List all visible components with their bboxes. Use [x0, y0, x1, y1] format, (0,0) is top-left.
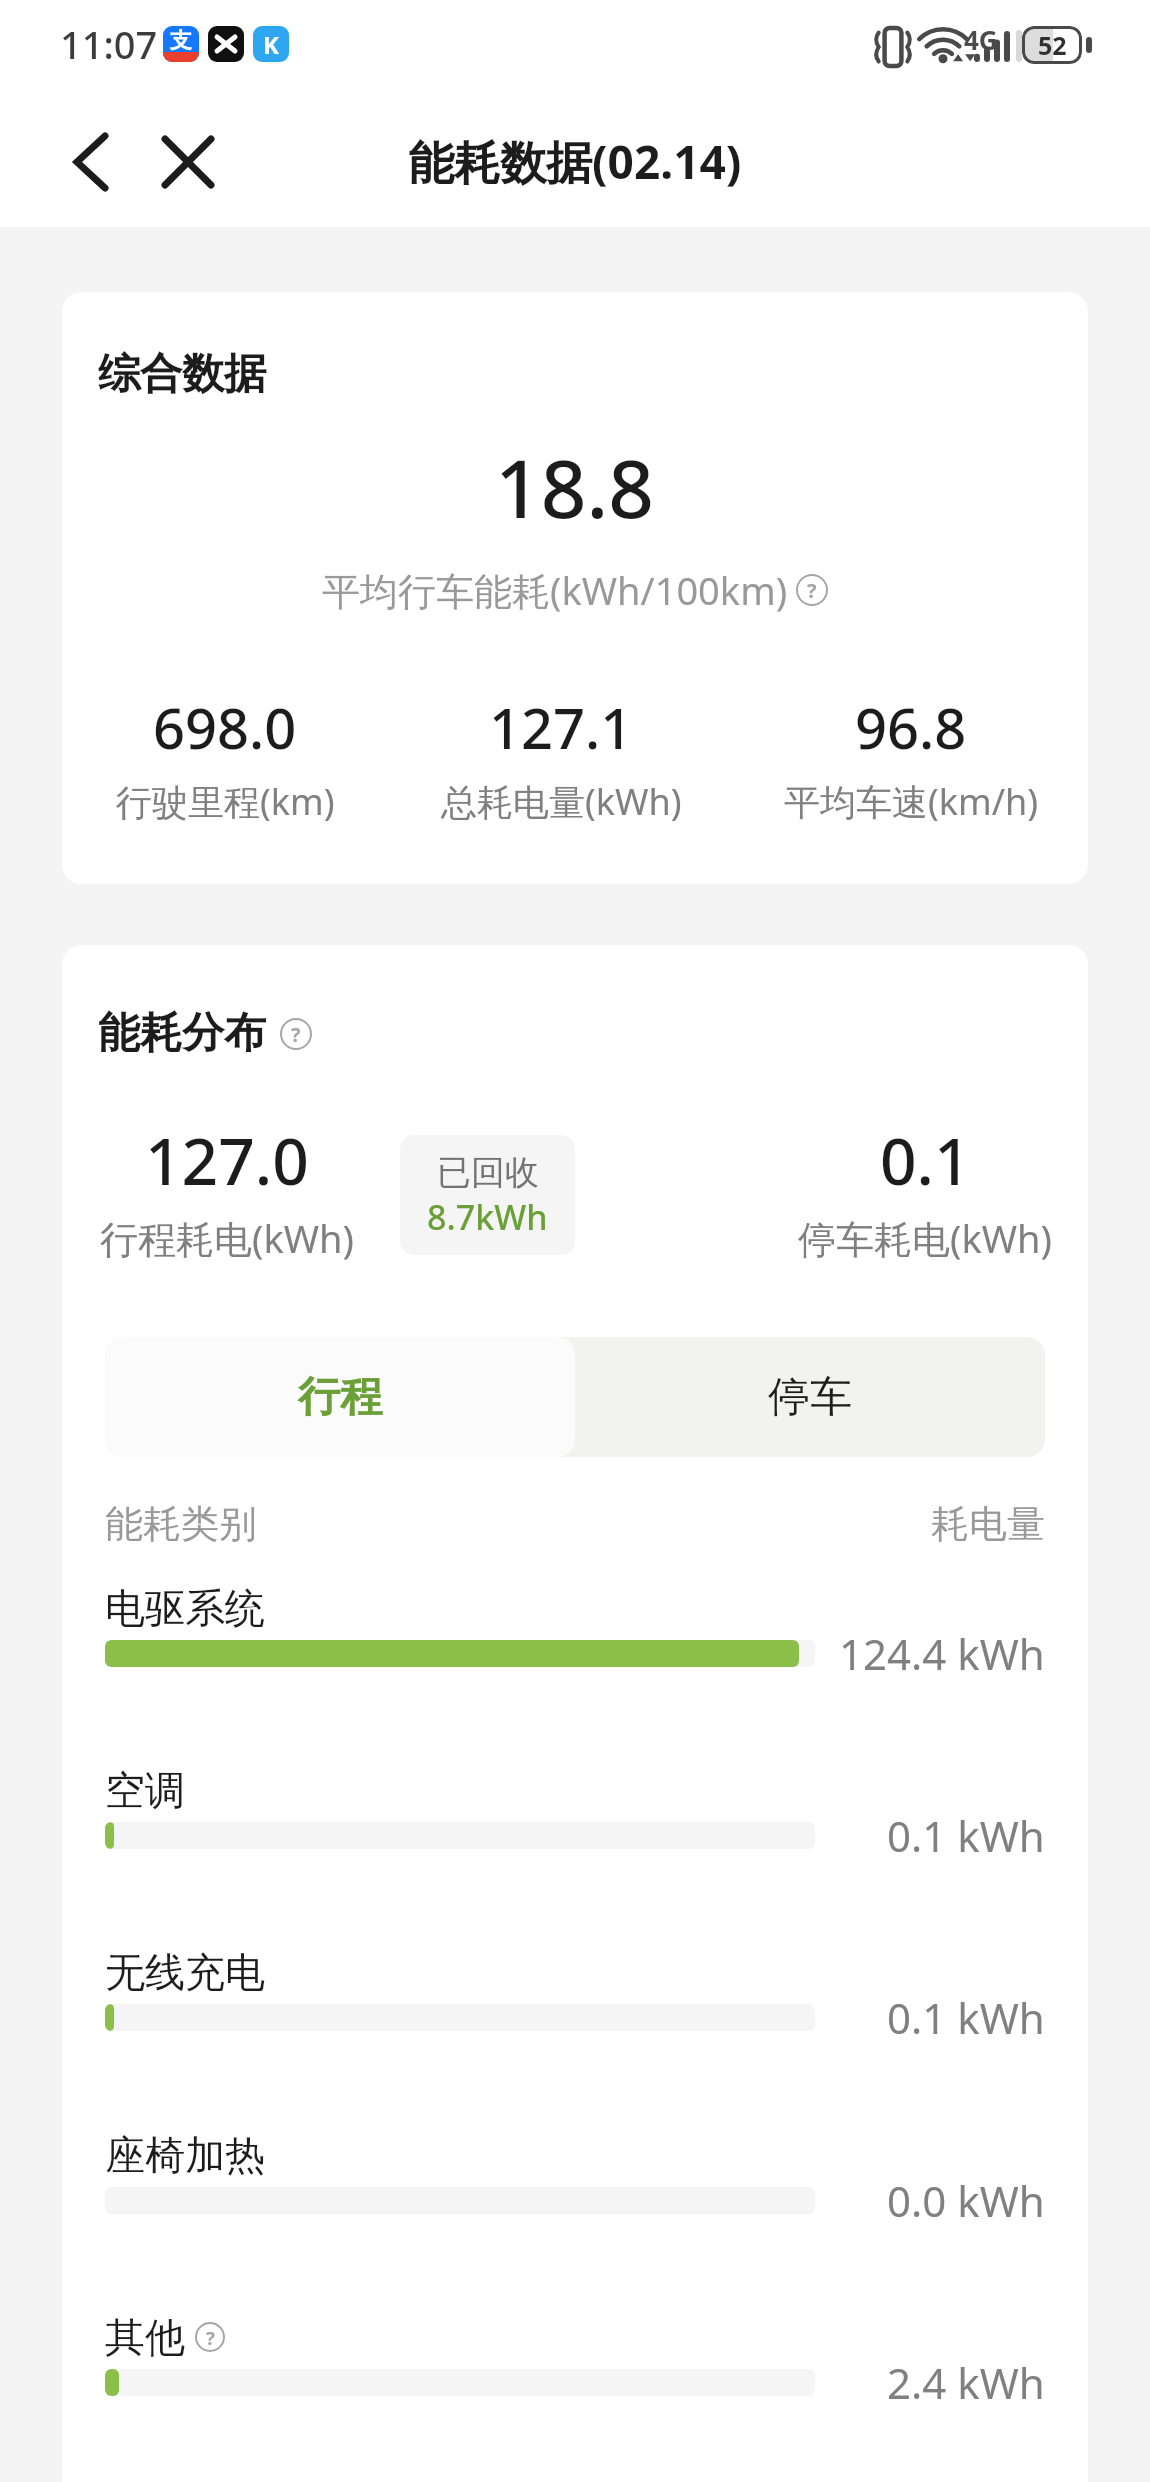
staticText: 能耗数据(02.14) — [408, 130, 742, 193]
staticText: 11:07 — [60, 18, 158, 70]
staticText: 8.7kWh — [427, 1194, 548, 1240]
staticText: 18.8 — [495, 432, 655, 541]
button[interactable]: ? — [195, 2322, 225, 2352]
staticText: 96.8 — [855, 689, 967, 765]
staticText: 行程 — [298, 1371, 382, 1424]
staticText: 平均车速(km/h) — [784, 777, 1039, 826]
staticText: 4G — [964, 22, 998, 57]
staticText: 能耗分布 — [98, 1007, 266, 1060]
staticText: 127.0 — [145, 1117, 309, 1204]
staticText: 0.1 kWh — [887, 1807, 1045, 1864]
staticText: ? — [206, 2325, 215, 2350]
staticText: 已回收 — [437, 1151, 539, 1194]
staticText: K — [263, 28, 279, 61]
staticText: 0.0 kWh — [887, 2172, 1045, 2229]
staticText: 电驱系统 — [105, 1583, 265, 1633]
button[interactable]: 停车 — [575, 1337, 1045, 1457]
staticText: 总耗电量(kWh) — [441, 777, 682, 826]
staticText: 其他 — [105, 2312, 185, 2362]
staticText: 空调 — [105, 1765, 185, 1815]
staticText: 停车 — [768, 1371, 852, 1424]
staticText: 平均行车能耗(kWh/100km) — [322, 564, 788, 616]
staticText: 支 — [170, 27, 192, 55]
staticText: 2.4 kWh — [887, 2354, 1045, 2411]
staticText: ? — [291, 1021, 301, 1048]
staticText: 停车耗电(kWh) — [798, 1212, 1052, 1264]
staticText: 0.1 — [880, 1117, 971, 1204]
button[interactable] — [150, 124, 226, 200]
button[interactable]: ? — [796, 574, 828, 606]
staticText: 124.4 kWh — [839, 1625, 1045, 1682]
button[interactable]: ? — [280, 1018, 312, 1050]
button[interactable] — [52, 124, 128, 200]
staticText: 行驶里程(km) — [116, 777, 335, 826]
staticText: 综合数据 — [98, 348, 266, 401]
staticText: 耗电量 — [931, 1500, 1045, 1548]
button[interactable]: 行程 — [105, 1337, 575, 1457]
staticText: 行程耗电(kWh) — [100, 1212, 354, 1264]
staticText: 座椅加热 — [105, 2130, 265, 2180]
staticText: ? — [807, 577, 817, 604]
staticText: 127.1 — [489, 689, 633, 765]
staticText: 698.0 — [153, 689, 297, 765]
staticText: 52 — [1038, 28, 1067, 62]
staticText: 无线充电 — [105, 1947, 265, 1997]
staticText: 能耗类别 — [105, 1500, 257, 1548]
staticText: 0.1 kWh — [887, 1989, 1045, 2046]
